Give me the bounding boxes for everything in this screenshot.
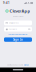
staticText: Sign in to continue xyxy=(12,15,23,17)
button[interactable]: Email address xyxy=(4,20,32,25)
button[interactable]: Don't have an account? xyxy=(7,64,29,66)
staticText: Sign Up xyxy=(24,64,29,66)
button[interactable]: Password xyxy=(4,27,32,32)
staticText: CleverApp xyxy=(9,8,30,14)
staticText: Forgot your password? xyxy=(8,34,27,35)
staticText: Email address xyxy=(9,22,19,24)
button[interactable]: Forgot your password? xyxy=(8,33,27,36)
staticText: Sign In xyxy=(13,38,23,41)
staticText: 9:41 xyxy=(3,1,10,5)
staticText: Password xyxy=(9,28,17,30)
button[interactable]: Sign In xyxy=(4,37,32,42)
staticText: Don't have an account? xyxy=(7,64,23,66)
